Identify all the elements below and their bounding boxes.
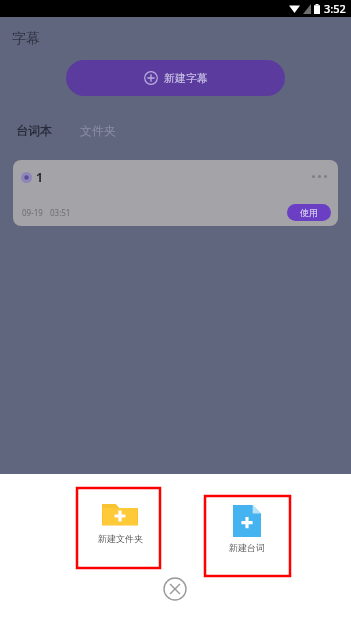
- staticText: 3:52: [324, 1, 346, 16]
- staticText: 1: [36, 169, 43, 185]
- staticText: 03:51: [50, 207, 71, 218]
- button[interactable]: 使用: [287, 204, 331, 221]
- button[interactable]: 新建台词: [219, 505, 275, 553]
- button[interactable]: 文件夹: [78, 121, 118, 140]
- staticText: 字幕: [12, 30, 40, 48]
- staticText: 新建字幕: [164, 71, 208, 85]
- staticText: 新建台词: [229, 542, 265, 553]
- staticText: 台词本: [16, 123, 52, 138]
- button[interactable]: 新建文件夹: [92, 498, 148, 544]
- button[interactable]: 台词本: [14, 121, 54, 140]
- button[interactable]: Close: [163, 577, 187, 601]
- staticText: 文件夹: [80, 123, 116, 138]
- staticText: 09-19: [22, 207, 43, 218]
- staticText: 新建文件夹: [98, 533, 143, 544]
- button[interactable]: More options: [308, 168, 330, 184]
- button[interactable]: 新建字幕: [66, 60, 285, 96]
- staticText: 使用: [300, 207, 318, 218]
- button[interactable]: 1: [13, 160, 338, 226]
